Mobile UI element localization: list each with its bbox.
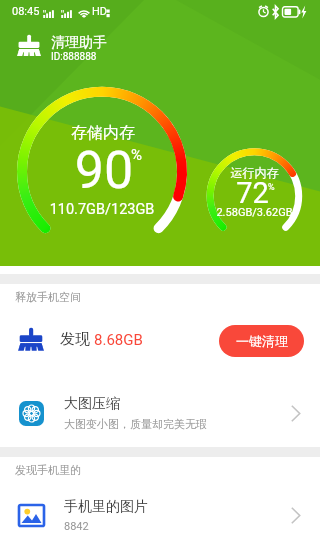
staticText: 运行内存: [214, 165, 295, 180]
staticText: 一键清理: [236, 333, 288, 349]
staticText: %: [131, 146, 142, 164]
other: 大图压缩: [291, 405, 301, 422]
button[interactable]: 一键清理: [219, 325, 304, 357]
button[interactable]: 大图压缩: [0, 383, 320, 443]
staticText: 大图变小图，质量却完美无瑕: [64, 417, 207, 431]
staticText: 110.7GB/123GB: [32, 201, 172, 218]
staticText: ID:888888: [51, 51, 97, 63]
staticText: 发现: [60, 330, 94, 349]
staticText: 08:45: [12, 5, 40, 18]
staticText: 8.68GB: [94, 331, 143, 349]
button[interactable]: 清理助手: [0, 24, 320, 72]
staticText: 手机里的图片: [64, 498, 148, 516]
staticText: %: [268, 182, 275, 193]
button[interactable]: 手机里的图片: [0, 485, 320, 533]
staticText: 发现手机里的: [15, 463, 81, 477]
button[interactable]: 发现: [0, 309, 320, 369]
staticText: 8842: [64, 520, 89, 533]
staticText: 释放手机空间: [15, 290, 81, 304]
staticText: 72: [214, 176, 291, 210]
staticText: 清理助手: [51, 34, 107, 52]
staticText: 90: [44, 140, 164, 201]
other: 手机里的图片: [291, 507, 301, 524]
staticText: 2.58GB/3.62GB: [199, 206, 310, 219]
staticText: 存储内存: [43, 123, 163, 143]
staticText: 大图压缩: [64, 395, 120, 413]
staticText: HD: [92, 5, 108, 18]
